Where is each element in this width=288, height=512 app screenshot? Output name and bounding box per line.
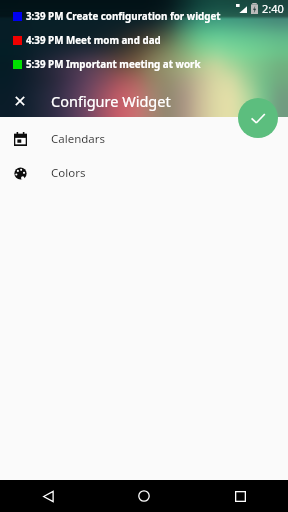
- button[interactable]: Recent apps: [192, 480, 288, 512]
- button[interactable]: Done: [238, 98, 278, 138]
- staticText: 5:39 PM Important meeting at work: [26, 58, 201, 71]
- button[interactable]: Home: [96, 480, 192, 512]
- staticText: 2:40: [262, 1, 284, 16]
- staticText: Configure Widget: [51, 91, 171, 111]
- staticText: Calendars: [51, 131, 106, 147]
- button[interactable]: Colors: [0, 156, 288, 190]
- button[interactable]: Close: [0, 85, 40, 117]
- staticText: 3:39 PM Create configuration for widget: [26, 10, 221, 23]
- button[interactable]: Back: [0, 480, 96, 512]
- button[interactable]: Calendars: [0, 122, 288, 156]
- staticText: Colors: [51, 165, 86, 181]
- staticText: 4:39 PM Meet mom and dad: [26, 34, 161, 47]
